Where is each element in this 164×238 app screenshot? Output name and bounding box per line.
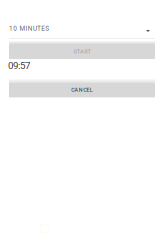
button[interactable]: START [9,41,155,59]
button[interactable]: 10 MINUTES [0,22,164,39]
staticText: 10 MINUTES [9,25,49,32]
staticText: CANCEL [71,87,93,93]
staticText: START [73,48,91,55]
button[interactable]: CANCEL [9,79,155,97]
staticText: 09:57 [8,60,30,71]
